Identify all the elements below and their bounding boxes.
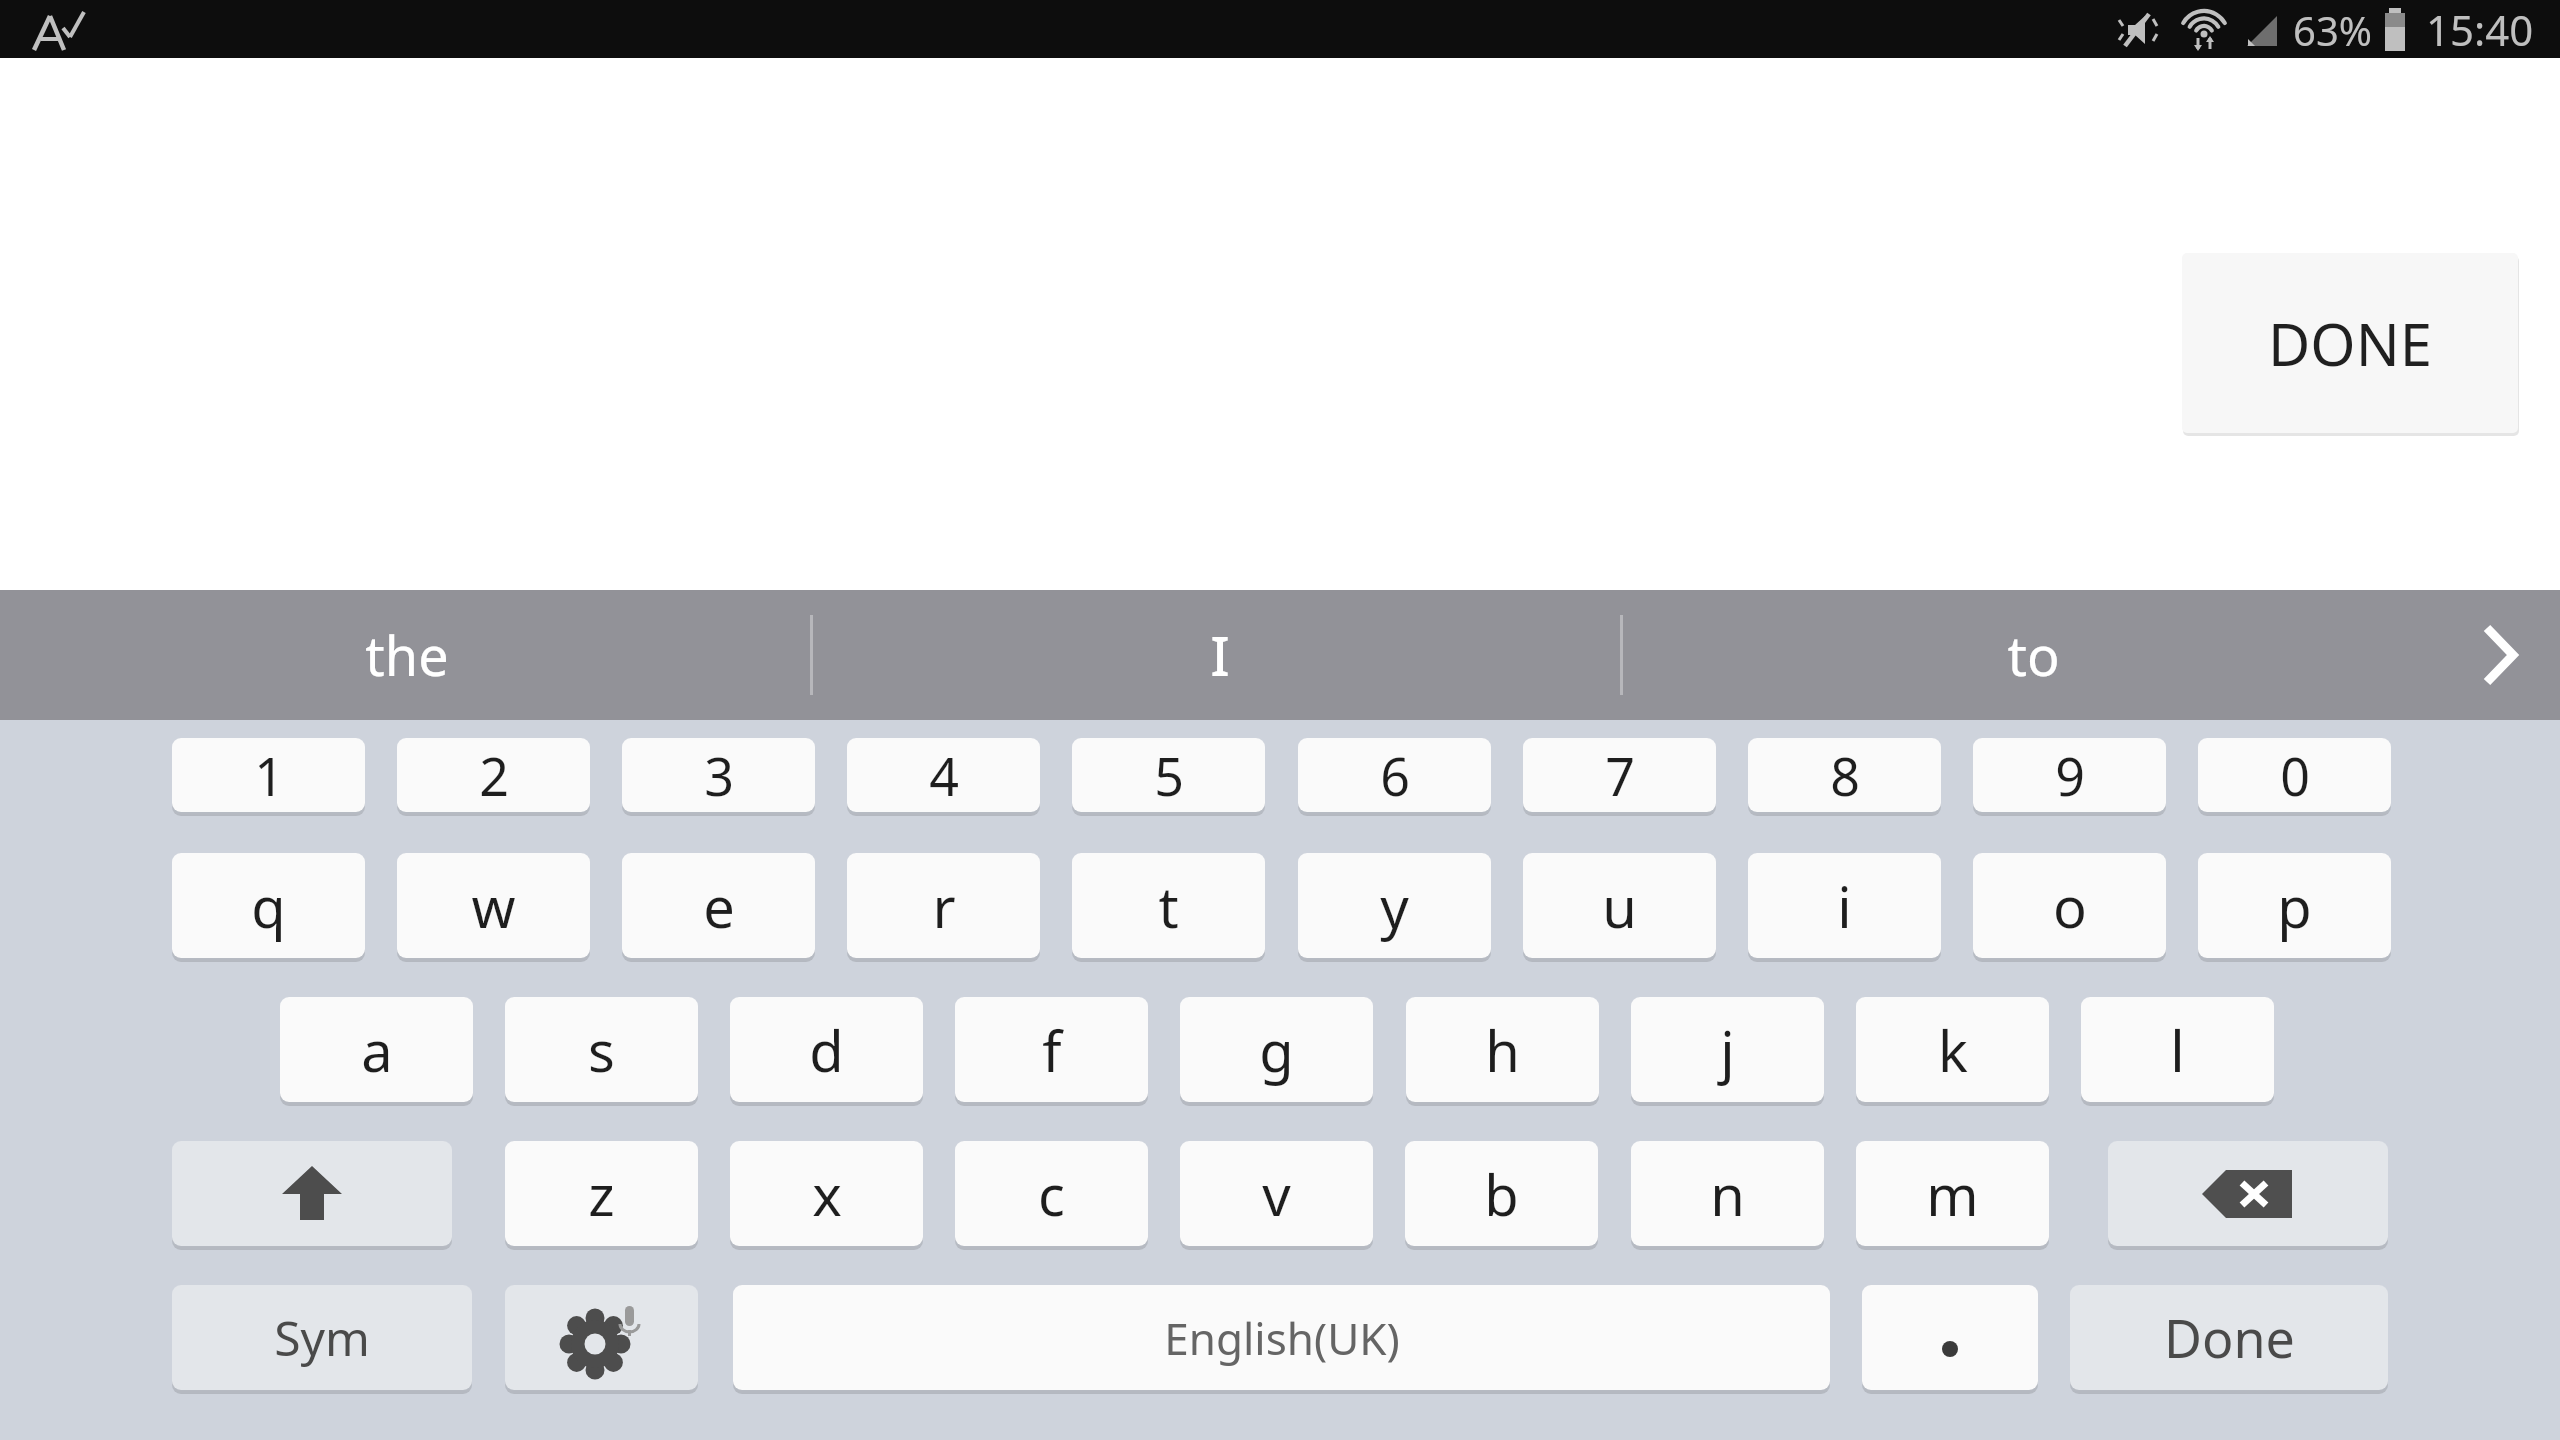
- staticText: l: [2170, 1012, 2185, 1088]
- button[interactable]: h: [1406, 997, 1599, 1102]
- button[interactable]: u: [1523, 853, 1716, 958]
- staticText: 8: [1830, 740, 1860, 811]
- button[interactable]: w: [397, 853, 590, 958]
- button[interactable]: 5: [1072, 738, 1265, 812]
- staticText: 0: [2280, 740, 2310, 811]
- staticText: b: [1484, 1156, 1519, 1232]
- button[interactable]: v: [1180, 1141, 1373, 1246]
- staticText: I: [1210, 618, 1230, 692]
- button[interactable]: 0: [2198, 738, 2391, 812]
- other: Spell check: [30, 10, 90, 52]
- staticText: m: [1926, 1156, 1979, 1232]
- button[interactable]: q: [172, 853, 365, 958]
- button[interactable]: Keyboard settings: [505, 1285, 698, 1390]
- staticText: 15:40: [2426, 1, 2534, 58]
- staticText: t: [1158, 868, 1179, 944]
- staticText: the: [365, 618, 449, 692]
- button[interactable]: l: [2081, 997, 2274, 1102]
- staticText: w: [471, 868, 516, 944]
- button[interactable]: 8: [1748, 738, 1941, 812]
- button[interactable]: t: [1072, 853, 1265, 958]
- staticText: Done: [2164, 1302, 2295, 1373]
- button[interactable]: d: [730, 997, 923, 1102]
- button[interactable]: k: [1856, 997, 2049, 1102]
- button[interactable]: to: [1627, 590, 2440, 720]
- staticText: 3: [704, 740, 734, 811]
- button[interactable]: c: [955, 1141, 1148, 1246]
- staticText: Sym: [274, 1305, 370, 1370]
- button[interactable]: Backspace: [2108, 1141, 2388, 1246]
- staticText: e: [703, 868, 735, 944]
- staticText: q: [251, 868, 286, 944]
- staticText: v: [1262, 1156, 1291, 1232]
- button[interactable]: 2: [397, 738, 590, 812]
- staticText: p: [2277, 868, 2312, 944]
- staticText: 7: [1605, 740, 1635, 811]
- staticText: z: [588, 1156, 615, 1232]
- button[interactable]: [1862, 1285, 2038, 1390]
- button[interactable]: x: [730, 1141, 923, 1246]
- button[interactable]: p: [2198, 853, 2391, 958]
- button[interactable]: 3: [622, 738, 815, 812]
- button[interactable]: o: [1973, 853, 2166, 958]
- button[interactable]: the: [0, 590, 813, 720]
- button[interactable]: Shift: [172, 1141, 452, 1246]
- button[interactable]: 9: [1973, 738, 2166, 812]
- staticText: f: [1042, 1012, 1062, 1088]
- button[interactable]: Sym: [172, 1285, 472, 1390]
- staticText: s: [588, 1012, 615, 1088]
- button[interactable]: DONE: [2182, 253, 2518, 433]
- button[interactable]: 4: [847, 738, 1040, 812]
- staticText: k: [1938, 1012, 1968, 1088]
- staticText: a: [361, 1012, 393, 1088]
- staticText: to: [2007, 618, 2060, 692]
- button[interactable]: f: [955, 997, 1148, 1102]
- button[interactable]: r: [847, 853, 1040, 958]
- staticText: 5: [1154, 740, 1184, 811]
- button[interactable]: I: [813, 590, 1626, 720]
- staticText: h: [1485, 1012, 1520, 1088]
- button[interactable]: More suggestions: [2440, 590, 2560, 720]
- button[interactable]: e: [622, 853, 815, 958]
- staticText: j: [1720, 1012, 1735, 1088]
- button[interactable]: y: [1298, 853, 1491, 958]
- staticText: u: [1602, 868, 1637, 944]
- button[interactable]: 7: [1523, 738, 1716, 812]
- staticText: 2: [479, 740, 509, 811]
- staticText: DONE: [2268, 304, 2432, 383]
- staticText: 63%: [2293, 3, 2372, 57]
- button[interactable]: m: [1856, 1141, 2049, 1246]
- staticText: n: [1710, 1156, 1745, 1232]
- staticText: 6: [1380, 740, 1410, 811]
- button[interactable]: 1: [172, 738, 365, 812]
- button[interactable]: a: [280, 997, 473, 1102]
- button[interactable]: b: [1405, 1141, 1598, 1246]
- staticText: English(UK): [1164, 1308, 1400, 1368]
- staticText: r: [932, 868, 956, 944]
- staticText: y: [1380, 868, 1409, 944]
- button[interactable]: j: [1631, 997, 1824, 1102]
- staticText: 1: [254, 740, 284, 811]
- button[interactable]: z: [505, 1141, 698, 1246]
- staticText: d: [809, 1012, 844, 1088]
- button[interactable]: n: [1631, 1141, 1824, 1246]
- button[interactable]: i: [1748, 853, 1941, 958]
- button[interactable]: English(UK): [733, 1285, 1830, 1390]
- button[interactable]: Done: [2070, 1285, 2388, 1390]
- staticText: 4: [929, 740, 959, 811]
- button[interactable]: 6: [1298, 738, 1491, 812]
- staticText: 9: [2055, 740, 2085, 811]
- button[interactable]: s: [505, 997, 698, 1102]
- staticText: g: [1259, 1012, 1294, 1088]
- staticText: c: [1038, 1156, 1065, 1232]
- staticText: o: [2053, 868, 2087, 944]
- staticText: i: [1837, 868, 1852, 944]
- button[interactable]: g: [1180, 997, 1373, 1102]
- staticText: x: [812, 1156, 842, 1232]
